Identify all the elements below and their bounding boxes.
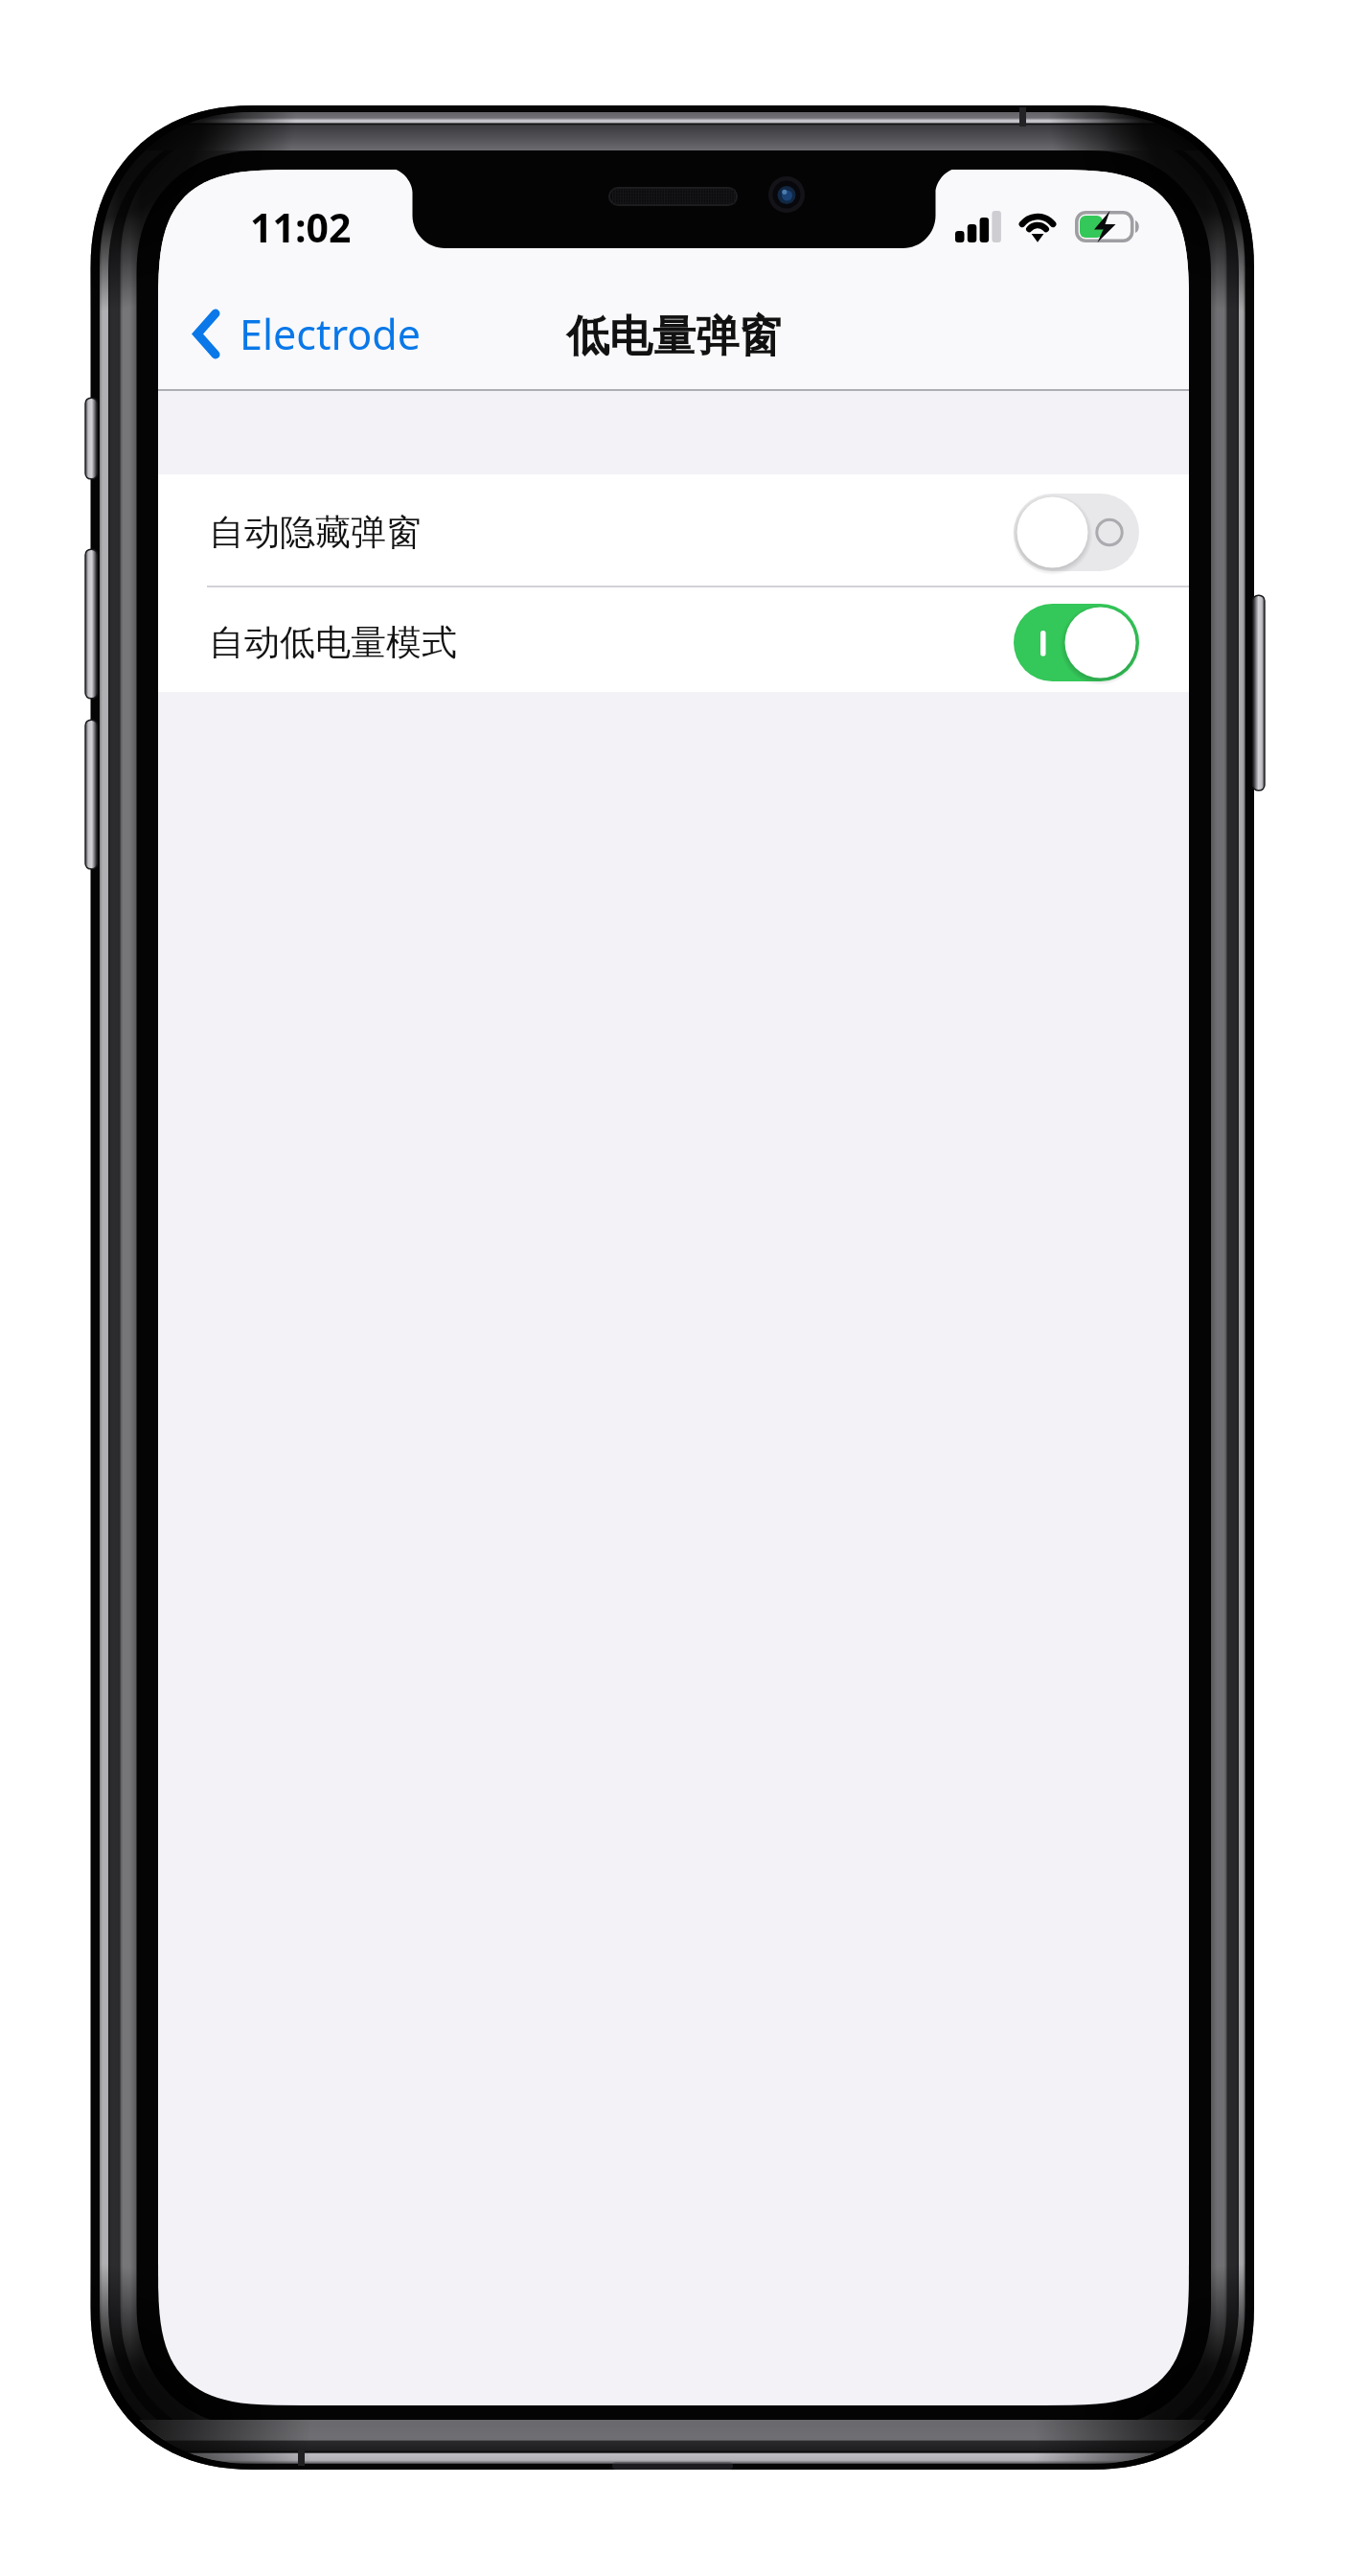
staticText: 自动低电量模式 [209, 620, 457, 665]
staticText: Electrode [240, 306, 422, 362]
staticText: 自动隐藏弹窗 [209, 510, 422, 555]
button[interactable]: 自动隐藏弹窗 [158, 474, 1189, 586]
staticText: 11:02 [250, 200, 352, 254]
button[interactable]: Switch on [1014, 604, 1139, 681]
button[interactable]: Electrode [158, 296, 439, 372]
button[interactable]: 自动低电量模式 [158, 587, 1189, 692]
staticText: 低电量弹窗 [566, 310, 782, 364]
button[interactable]: Switch off [1014, 494, 1139, 571]
